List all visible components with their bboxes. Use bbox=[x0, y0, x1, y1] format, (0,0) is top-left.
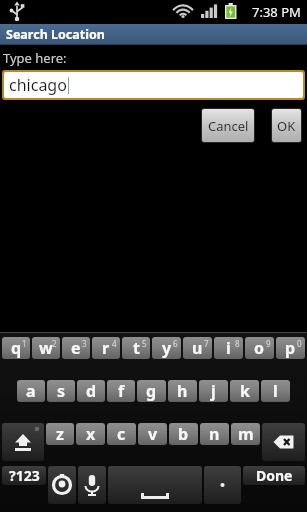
staticText: u bbox=[192, 337, 203, 359]
staticText: 4 bbox=[112, 338, 117, 349]
staticText: 1 bbox=[22, 338, 27, 349]
button[interactable]: chicago bbox=[4, 72, 303, 98]
staticText: 7:38 PM bbox=[252, 3, 301, 21]
staticText: w bbox=[39, 337, 53, 359]
button[interactable]: j bbox=[199, 380, 228, 402]
button[interactable]: f bbox=[107, 380, 135, 402]
staticText: r bbox=[102, 337, 110, 359]
button[interactable]: m bbox=[231, 423, 260, 445]
button[interactable]: Backspace bbox=[262, 423, 305, 461]
staticText: 8 bbox=[235, 338, 240, 349]
staticText: b bbox=[178, 423, 189, 445]
staticText: f bbox=[118, 380, 125, 402]
button[interactable]: g bbox=[137, 380, 166, 402]
staticText: v bbox=[148, 423, 158, 445]
staticText: n bbox=[209, 423, 220, 445]
button[interactable]: r bbox=[92, 337, 120, 359]
staticText: 7 bbox=[204, 338, 209, 349]
button[interactable]: h bbox=[168, 380, 197, 402]
button[interactable]: OK bbox=[272, 109, 301, 142]
button[interactable]: t bbox=[122, 337, 150, 359]
button[interactable]: Space bbox=[108, 466, 202, 504]
button[interactable]: ?123 bbox=[2, 466, 46, 485]
staticText: y bbox=[162, 337, 172, 359]
staticText: OK bbox=[277, 117, 296, 135]
button[interactable]: k bbox=[230, 380, 259, 402]
staticText: p bbox=[285, 337, 296, 359]
staticText: chicago bbox=[9, 74, 67, 96]
button[interactable]: d bbox=[77, 380, 105, 402]
staticText: 5 bbox=[142, 338, 147, 349]
button[interactable]: Voice input bbox=[78, 466, 106, 504]
staticText: m bbox=[238, 423, 254, 445]
button[interactable]: b bbox=[169, 423, 198, 445]
staticText: 2 bbox=[52, 338, 57, 349]
button[interactable]: e bbox=[62, 337, 90, 359]
button[interactable]: Period bbox=[204, 466, 241, 504]
button[interactable]: n bbox=[200, 423, 229, 445]
staticText: q bbox=[11, 337, 22, 359]
button[interactable]: z bbox=[46, 423, 74, 445]
staticText: z bbox=[56, 423, 64, 445]
staticText: d bbox=[86, 380, 97, 402]
staticText: j bbox=[211, 380, 216, 402]
staticText: l bbox=[273, 380, 278, 402]
staticText: k bbox=[240, 380, 250, 402]
staticText: x bbox=[86, 423, 96, 445]
button[interactable]: y bbox=[152, 337, 181, 359]
button[interactable]: Cancel bbox=[202, 109, 254, 142]
staticText: g bbox=[146, 380, 157, 402]
button[interactable]: p bbox=[276, 337, 305, 359]
staticText: t bbox=[133, 337, 140, 359]
staticText: h bbox=[177, 380, 188, 402]
staticText: 9 bbox=[266, 338, 271, 349]
button[interactable]: x bbox=[76, 423, 105, 445]
button[interactable]: q bbox=[2, 337, 30, 359]
button[interactable]: s bbox=[47, 380, 75, 402]
staticText: s bbox=[57, 380, 66, 402]
button[interactable]: v bbox=[138, 423, 167, 445]
staticText: a bbox=[26, 380, 36, 402]
staticText: Search Location bbox=[6, 26, 105, 43]
staticText: 0 bbox=[297, 338, 302, 349]
button[interactable]: Done bbox=[243, 466, 305, 485]
button[interactable]: Shift bbox=[2, 423, 44, 461]
staticText: 3 bbox=[82, 338, 87, 349]
staticText: i bbox=[226, 337, 231, 359]
staticText: c bbox=[117, 423, 126, 445]
staticText: e bbox=[71, 337, 81, 359]
button[interactable]: c bbox=[107, 423, 136, 445]
button[interactable]: o bbox=[245, 337, 274, 359]
staticText: ?123 bbox=[9, 466, 40, 485]
staticText: o bbox=[254, 337, 265, 359]
button[interactable]: u bbox=[183, 337, 212, 359]
button[interactable]: w bbox=[32, 337, 60, 359]
button[interactable]: i bbox=[214, 337, 243, 359]
staticText: Type here: bbox=[3, 49, 67, 67]
staticText: Cancel bbox=[208, 117, 249, 135]
button[interactable]: a bbox=[17, 380, 45, 402]
staticText: 6 bbox=[173, 338, 178, 349]
button[interactable]: l bbox=[261, 380, 290, 402]
staticText: Done bbox=[256, 466, 293, 485]
button[interactable]: Input settings bbox=[48, 466, 76, 504]
